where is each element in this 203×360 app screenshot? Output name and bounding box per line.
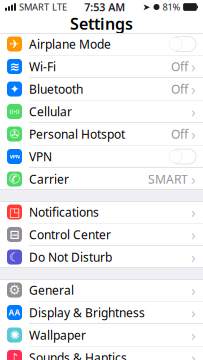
button[interactable]: ✺ [0, 324, 203, 346]
staticText: 81% [162, 1, 180, 13]
staticText: Sounds & Haptics [29, 349, 127, 360]
staticText: Do Not Disturb [29, 249, 112, 265]
staticText: Settings [70, 13, 133, 34]
staticText: Control Center [29, 226, 111, 242]
button[interactable]: ((•)) [0, 100, 203, 123]
staticText: ((•)) [9, 108, 19, 115]
staticText: Cellular [29, 103, 72, 119]
staticText: › [191, 303, 196, 322]
button[interactable]: ⚙ [0, 279, 203, 301]
staticText: › [191, 102, 196, 121]
button[interactable]: ✦ [0, 78, 203, 100]
staticText: LTE [52, 1, 67, 13]
staticText: › [191, 247, 196, 267]
staticText: Off [171, 58, 188, 74]
button[interactable]: ♪ [0, 346, 203, 360]
staticText: ✺ [9, 328, 19, 342]
staticText: Off [171, 126, 188, 142]
staticText: ✆ [9, 171, 20, 186]
staticText: ✈ [9, 37, 19, 51]
staticText: Notifications [29, 204, 99, 220]
button[interactable]: AA [0, 301, 203, 324]
staticText: ✇ [9, 127, 19, 141]
staticText: Carrier [29, 171, 69, 187]
staticText: VPN [9, 153, 19, 160]
staticText: VPN [29, 148, 52, 164]
staticText: › [191, 57, 196, 76]
staticText: General [29, 282, 74, 298]
staticText: › [191, 225, 196, 244]
staticText: › [191, 169, 196, 189]
staticText: › [191, 202, 196, 222]
staticText: ⊟ [9, 228, 19, 241]
staticText: ◳ [9, 205, 20, 219]
staticText: › [191, 280, 196, 300]
staticText: ≋ [9, 60, 19, 73]
staticText: Display & Brightness [29, 304, 145, 320]
staticText: ⚙ [8, 282, 20, 297]
staticText: › [191, 124, 196, 144]
staticText: ☾ [9, 250, 20, 264]
staticText: 7:53 AM [84, 0, 125, 14]
staticText: Off [171, 81, 188, 97]
staticText: ➤ [142, 2, 150, 12]
button[interactable]: VPN [0, 145, 203, 168]
button[interactable]: ☾ [0, 246, 203, 268]
button[interactable]: ✆ [0, 168, 203, 190]
button[interactable]: ⊟ [0, 223, 203, 246]
staticText: Airplane Mode [29, 36, 111, 52]
staticText: ♪ [10, 351, 18, 360]
staticText: Bluetooth [29, 81, 83, 97]
button[interactable]: ✈ [0, 33, 203, 55]
staticText: ✦ [9, 82, 19, 96]
staticText: Personal Hotspot [29, 126, 125, 142]
staticText: AA [8, 307, 20, 318]
staticText: Wallpaper [29, 327, 86, 343]
button[interactable]: ✇ [0, 123, 203, 145]
staticText: SMART [148, 171, 188, 187]
button[interactable]: ◳ [0, 201, 203, 223]
staticText: › [191, 325, 196, 345]
staticText: SMART [19, 1, 49, 13]
button[interactable]: ≋ [0, 55, 203, 78]
staticText: › [191, 79, 196, 99]
staticText: Wi-Fi [29, 58, 56, 74]
staticText: › [191, 348, 196, 360]
